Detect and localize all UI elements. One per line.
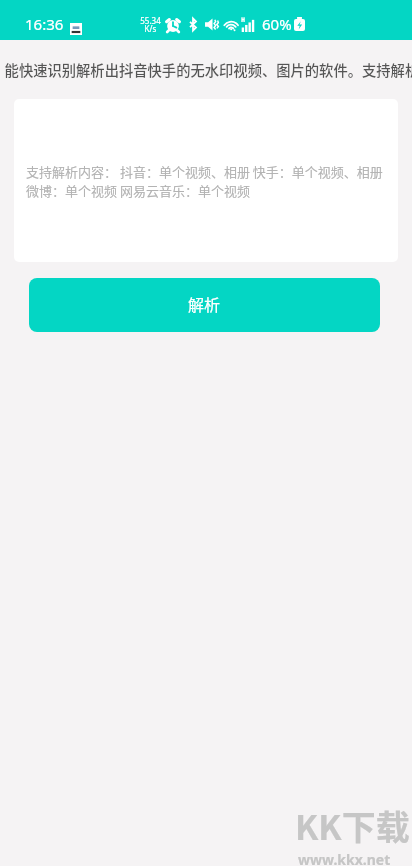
staticText: 件。能快速识别解析出抖音快手的无水印视频、图片的软件。支持解析: [0, 59, 412, 80]
staticText: 16:36: [25, 14, 64, 34]
button[interactable]: 解析: [29, 278, 380, 332]
staticText: KK下载: [295, 801, 410, 850]
staticText: 解析: [188, 292, 221, 315]
button[interactable]: 支持解析内容： 抖音：单个视频、相册 快手：单个视频、相册 微博：单个视频 网易…: [14, 99, 398, 262]
staticText: 60%: [262, 14, 292, 34]
staticText: 55.34 K/s: [140, 15, 161, 34]
staticText: www.kkx.net: [298, 850, 391, 866]
staticText: 支持解析内容： 抖音：单个视频、相册 快手：单个视频、相册 微博：单个视频 网易…: [26, 162, 383, 200]
